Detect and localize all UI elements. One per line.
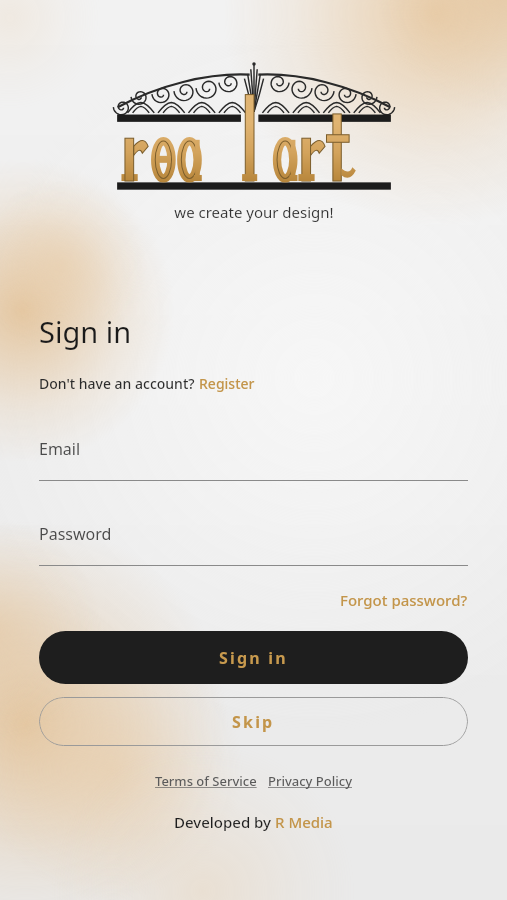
staticText: Don't have an account?	[39, 374, 199, 393]
staticText: Privacy Policy	[268, 772, 352, 790]
staticText: Password	[39, 523, 112, 545]
button[interactable]: Forgot password?	[340, 588, 468, 612]
button[interactable]: Register	[199, 374, 255, 393]
button[interactable]: Terms of Service	[155, 772, 257, 790]
button[interactable]: Password	[39, 523, 468, 566]
staticText: Sign in	[39, 312, 132, 351]
button[interactable]: Email	[39, 438, 468, 481]
button[interactable]: Privacy Policy	[268, 772, 352, 790]
staticText: R Media	[275, 812, 333, 832]
staticText: Skip	[232, 711, 275, 733]
staticText: we create your design!	[174, 202, 334, 222]
staticText: Forgot password?	[340, 590, 468, 610]
button[interactable]: Skip	[39, 697, 468, 746]
staticText: Register	[199, 374, 255, 393]
staticText: Email	[39, 438, 81, 460]
staticText: Sign in	[219, 647, 288, 669]
button[interactable]: R Media	[275, 812, 333, 832]
staticText: Terms of Service	[155, 772, 257, 790]
button[interactable]: Sign in	[39, 631, 468, 684]
staticText: Developed by	[174, 812, 275, 832]
